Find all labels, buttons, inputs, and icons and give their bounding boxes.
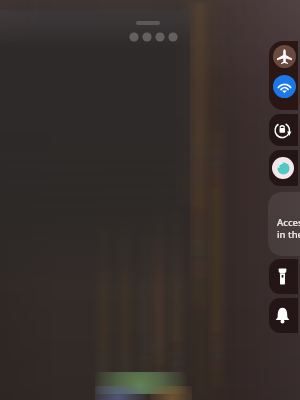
button[interactable]: Airplane mode — [269, 41, 298, 71]
button[interactable]: Flashlight — [269, 259, 298, 294]
button[interactable]: Location — [269, 150, 298, 186]
button[interactable]: Auto-rotate — [269, 114, 298, 146]
staticText: Access quick settings in the status bar — [277, 216, 300, 241]
button[interactable]: Wi-Fi — [269, 71, 298, 101]
button[interactable]: Notifications — [269, 298, 298, 333]
